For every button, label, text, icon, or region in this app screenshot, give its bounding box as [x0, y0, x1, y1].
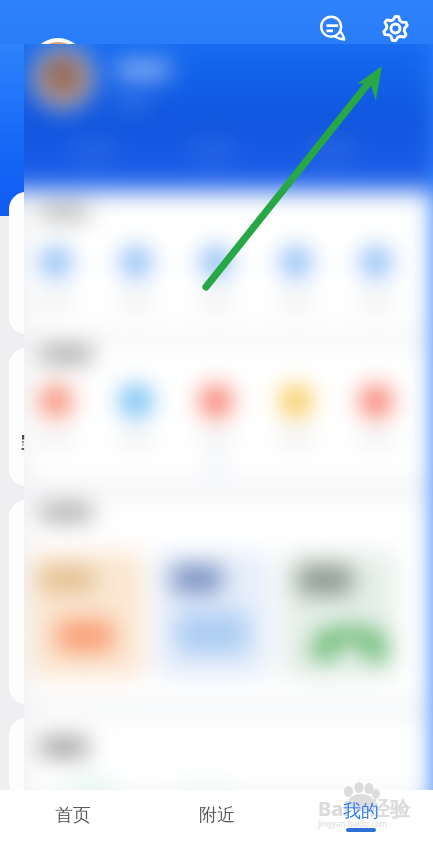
button[interactable]: Settings — [374, 7, 416, 49]
staticText: 我的 — [343, 800, 379, 823]
staticText: 附近 — [199, 804, 235, 827]
button[interactable]: 附近 — [145, 790, 289, 841]
button[interactable]: Messages — [312, 7, 354, 49]
staticText: Bai 经验 — [318, 795, 411, 822]
button[interactable]: 首页 — [0, 790, 145, 841]
button[interactable]: 我的 — [289, 790, 433, 841]
staticText: 首页 — [55, 804, 91, 827]
staticText: jingyan.baidu.com — [318, 818, 388, 829]
